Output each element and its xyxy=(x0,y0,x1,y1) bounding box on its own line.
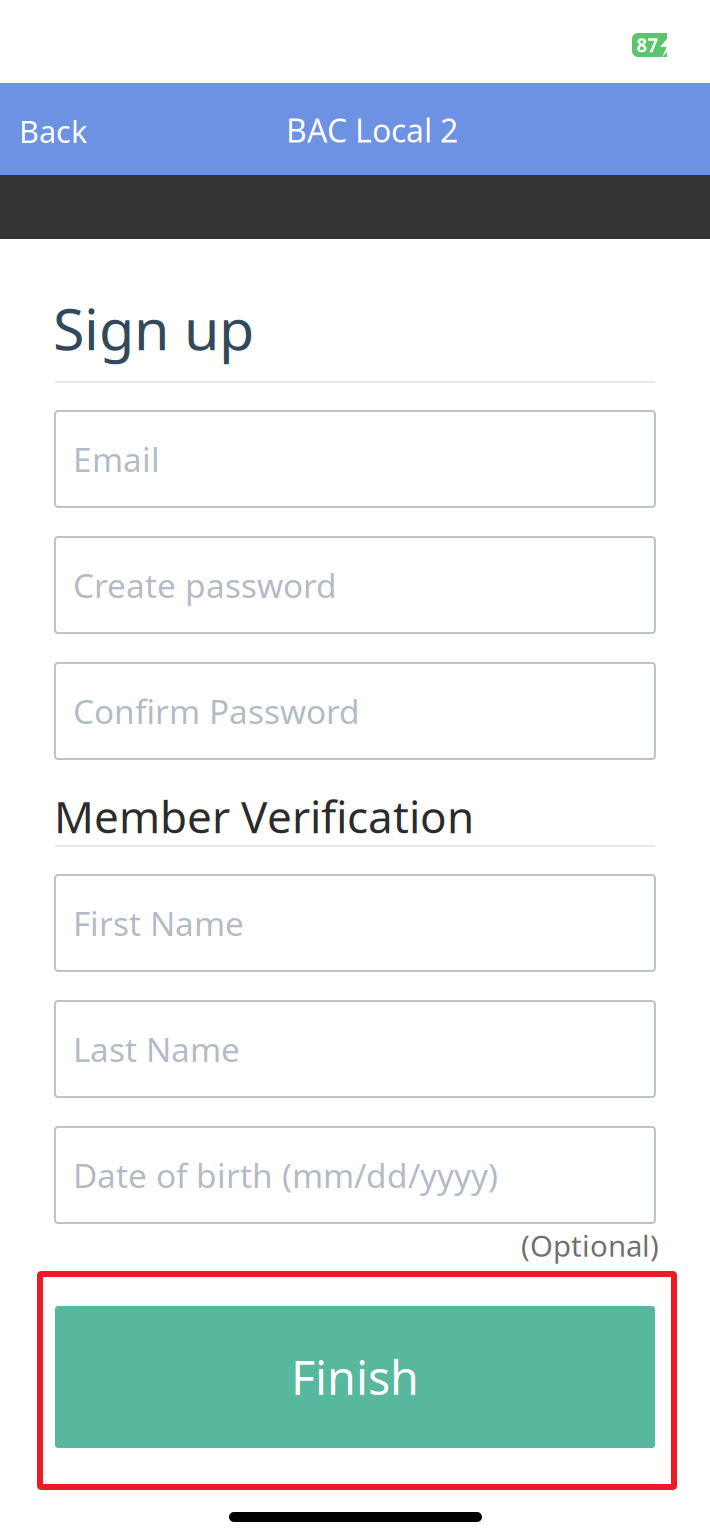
staticText: Member Verification xyxy=(54,787,474,845)
button[interactable]: Confirm Password xyxy=(55,663,655,759)
button[interactable]: Create password xyxy=(55,537,655,633)
button[interactable]: Finish xyxy=(55,1306,655,1448)
button[interactable]: BAC Local 2 xyxy=(272,84,472,176)
button[interactable]: First Name xyxy=(55,875,655,971)
button[interactable]: Last Name xyxy=(55,1001,655,1097)
staticText: Confirm Password xyxy=(73,689,360,733)
staticText: Sign up xyxy=(53,290,254,366)
staticText: Email xyxy=(73,437,160,481)
button[interactable]: Date of birth (mm/dd/yyyy) xyxy=(55,1127,655,1223)
staticText: First Name xyxy=(73,901,244,945)
staticText: Back xyxy=(19,111,87,151)
staticText: Last Name xyxy=(73,1027,240,1071)
button[interactable]: Back xyxy=(0,83,106,175)
staticText: Create password xyxy=(73,563,337,607)
staticText: 87 xyxy=(636,33,658,57)
staticText: BAC Local 2 xyxy=(286,109,458,151)
staticText: Date of birth (mm/dd/yyyy) xyxy=(73,1153,498,1197)
staticText: (Optional) xyxy=(521,1226,659,1265)
staticText: Finish xyxy=(291,1346,419,1408)
button[interactable]: Email xyxy=(55,411,655,507)
